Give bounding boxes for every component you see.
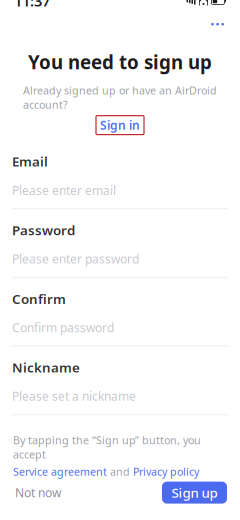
button[interactable]: Confirm (0, 290, 240, 358)
staticText: Sign in (100, 117, 140, 133)
staticText: Already signed up or have an AirDroid ac… (23, 83, 217, 112)
button[interactable]: Password (0, 221, 240, 290)
button[interactable]: Nickname (0, 358, 240, 427)
button[interactable]: More options (203, 15, 232, 33)
staticText: You need to sign up (28, 49, 212, 74)
staticText: Confirm password (12, 320, 114, 335)
staticText: By tapping the “Sign up” button, you acc… (13, 433, 201, 461)
staticText: Email (12, 153, 48, 170)
staticText: Not now (15, 485, 61, 500)
staticText: Service agreement (13, 464, 107, 479)
button[interactable]: Privacy policy (133, 464, 199, 479)
button[interactable]: Sign up (162, 482, 227, 504)
button[interactable]: Email (0, 153, 240, 221)
button[interactable]: Service agreement (13, 464, 107, 479)
staticText: Privacy policy (133, 464, 199, 479)
staticText: Please enter email (12, 182, 116, 198)
staticText: Please enter password (12, 251, 139, 267)
staticText: 11:37 (14, 0, 50, 11)
staticText: and (107, 464, 133, 479)
staticText: Confirm (12, 290, 66, 308)
staticText: Password (12, 221, 75, 239)
staticText: Sign up (171, 484, 217, 501)
button[interactable]: Sign in (96, 116, 144, 134)
staticText: Nickname (12, 358, 80, 376)
button[interactable]: Not now (13, 479, 63, 506)
staticText: Please set a nickname (12, 388, 136, 404)
